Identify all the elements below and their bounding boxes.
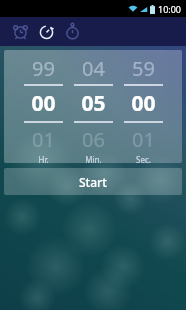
staticText: Start [79, 174, 107, 190]
button[interactable]: 04 [68, 55, 118, 82]
staticText: 01 [32, 126, 55, 153]
button[interactable]: 59 [118, 55, 168, 82]
button[interactable]: Timer [33, 17, 59, 46]
staticText: Hr. [38, 154, 49, 163]
staticText: 00 [31, 89, 56, 118]
button[interactable]: 05 [68, 89, 118, 118]
staticText: Sec. [136, 154, 151, 163]
button[interactable]: Sec. [118, 154, 168, 163]
staticText: 06 [82, 126, 105, 153]
button[interactable]: 00 [18, 89, 68, 118]
button[interactable]: Alarm [7, 17, 33, 46]
staticText: 04 [82, 55, 105, 82]
staticText: 01 [132, 126, 155, 153]
button[interactable]: Min. [68, 154, 118, 163]
button[interactable]: 01 [18, 126, 68, 153]
staticText: 00 [131, 89, 156, 118]
button[interactable]: 01 [118, 126, 168, 153]
button[interactable]: 06 [68, 126, 118, 153]
button[interactable]: Stopwatch [59, 17, 85, 46]
button[interactable]: Start [4, 168, 182, 195]
button[interactable]: Hr. [18, 154, 68, 163]
button[interactable]: 99 [18, 55, 68, 82]
staticText: 05 [81, 89, 106, 118]
staticText: 99 [32, 55, 55, 82]
staticText: 59 [132, 55, 155, 82]
staticText: 10:00 [158, 3, 182, 15]
button[interactable]: 00 [118, 89, 168, 118]
staticText: Min. [85, 154, 102, 163]
